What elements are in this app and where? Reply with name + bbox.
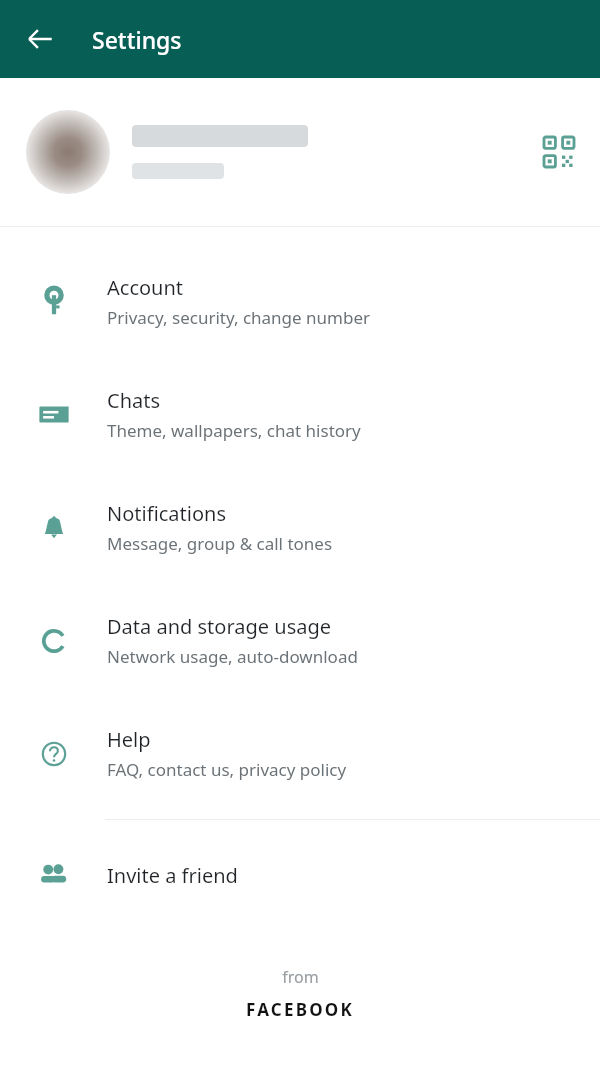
- staticText: Chats: [107, 387, 161, 414]
- staticText: Help: [107, 726, 151, 753]
- staticText: Message, group & call tones: [107, 532, 333, 555]
- button[interactable]: Help: [0, 697, 600, 810]
- staticText: Account: [107, 274, 184, 301]
- button[interactable]: Back: [12, 11, 68, 67]
- staticText: Theme, wallpapers, chat history: [107, 419, 361, 442]
- staticText: Data and storage usage: [107, 613, 332, 640]
- button[interactable]: Chats: [0, 358, 600, 471]
- button[interactable]: Data and storage usage: [0, 584, 600, 697]
- button[interactable]: Invite a friend: [0, 820, 600, 930]
- staticText: Invite a friend: [107, 862, 238, 889]
- staticText: Notifications: [107, 500, 226, 527]
- button[interactable]: QR code: [0, 78, 600, 226]
- button[interactable]: Account: [0, 245, 600, 358]
- staticText: Network usage, auto-download: [107, 645, 358, 668]
- staticText: Settings: [92, 24, 182, 55]
- button[interactable]: QR code: [528, 121, 590, 183]
- button[interactable]: Notifications: [0, 471, 600, 584]
- staticText: FACEBOOK: [246, 998, 354, 1021]
- staticText: from: [282, 966, 319, 988]
- staticText: FAQ, contact us, privacy policy: [107, 758, 347, 781]
- staticText: Privacy, security, change number: [107, 306, 371, 329]
